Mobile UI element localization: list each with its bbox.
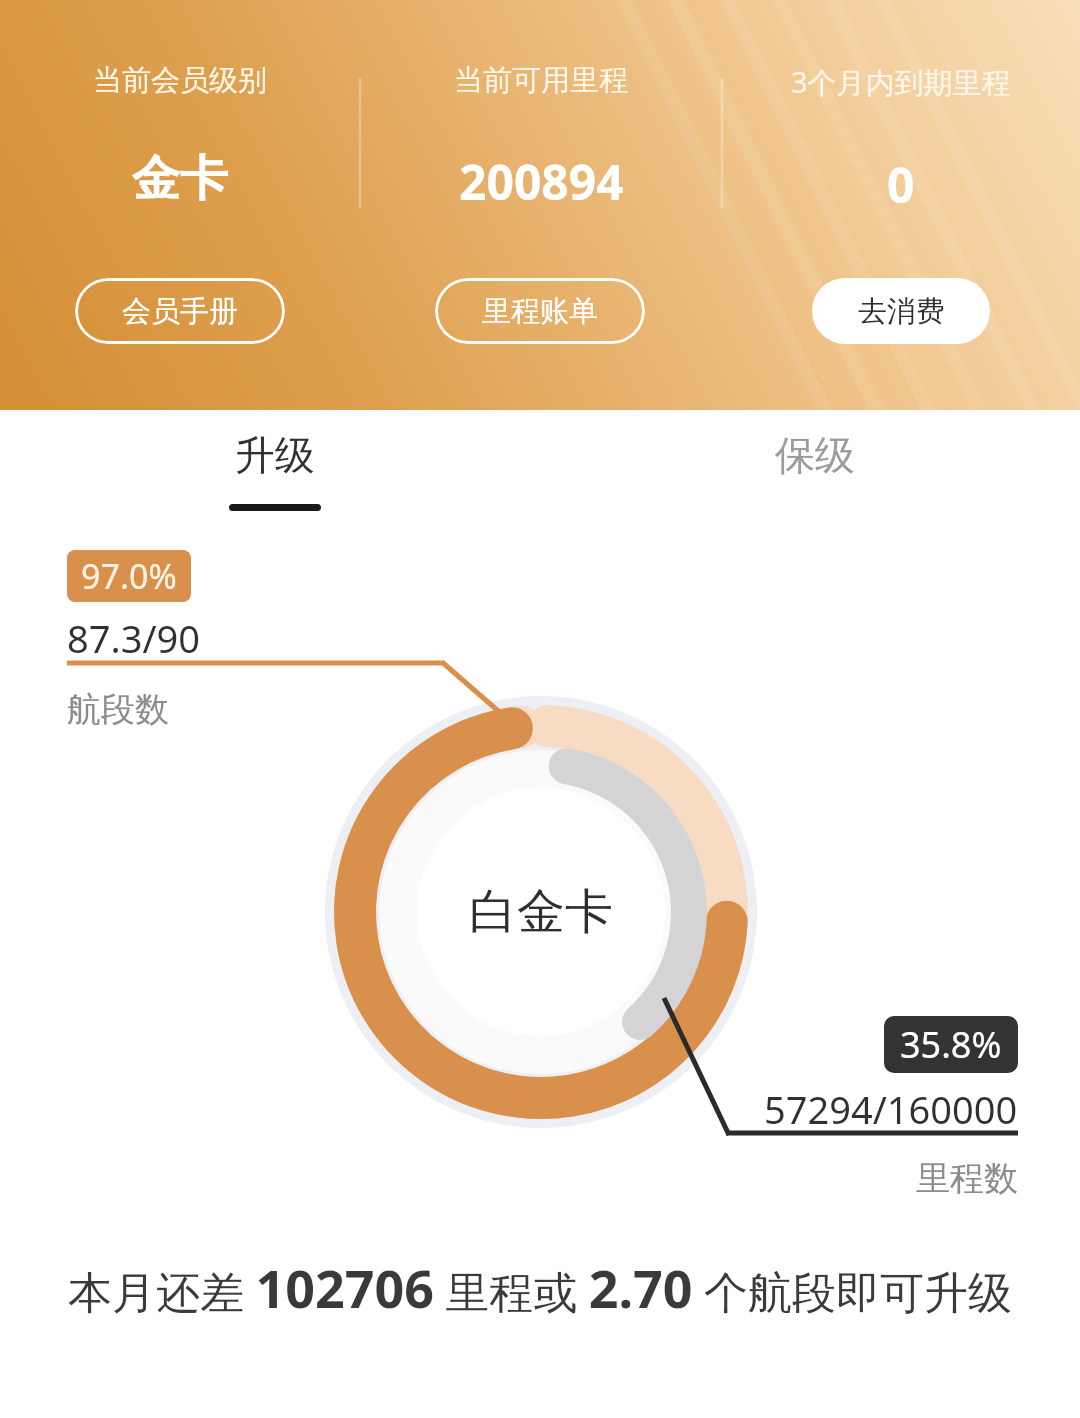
- staticText: 航段数: [67, 688, 169, 731]
- button[interactable]: 里程账单: [435, 278, 645, 344]
- staticText: 97.0%: [81, 553, 177, 599]
- staticText: 当前可用里程: [454, 62, 628, 99]
- staticText: 里程账单: [482, 293, 598, 330]
- staticText: 当前会员级别: [93, 62, 267, 99]
- staticText: 57294/160000: [764, 1083, 1018, 1135]
- staticText: 升级: [235, 430, 315, 480]
- staticText: 87.3/90: [67, 612, 201, 664]
- staticText: 0: [887, 152, 915, 217]
- button[interactable]: 去消费: [812, 278, 990, 344]
- staticText: 35.8%: [900, 1020, 1002, 1069]
- staticText: 本月还差 102706 里程或 2.70 个航段即可升级: [40, 1252, 1040, 1323]
- button[interactable]: 保级: [685, 430, 945, 540]
- staticText: 保级: [775, 430, 855, 480]
- staticText: 里程数: [916, 1157, 1018, 1200]
- button[interactable]: 会员手册: [75, 278, 285, 344]
- staticText: 会员手册: [122, 293, 238, 330]
- button[interactable]: 升级: [145, 430, 405, 560]
- staticText: 金卡: [132, 149, 228, 209]
- staticText: 200894: [459, 149, 624, 214]
- staticText: 去消费: [858, 293, 945, 330]
- staticText: 白金卡: [469, 882, 613, 942]
- staticText: 3个月内到期里程: [791, 62, 1011, 102]
